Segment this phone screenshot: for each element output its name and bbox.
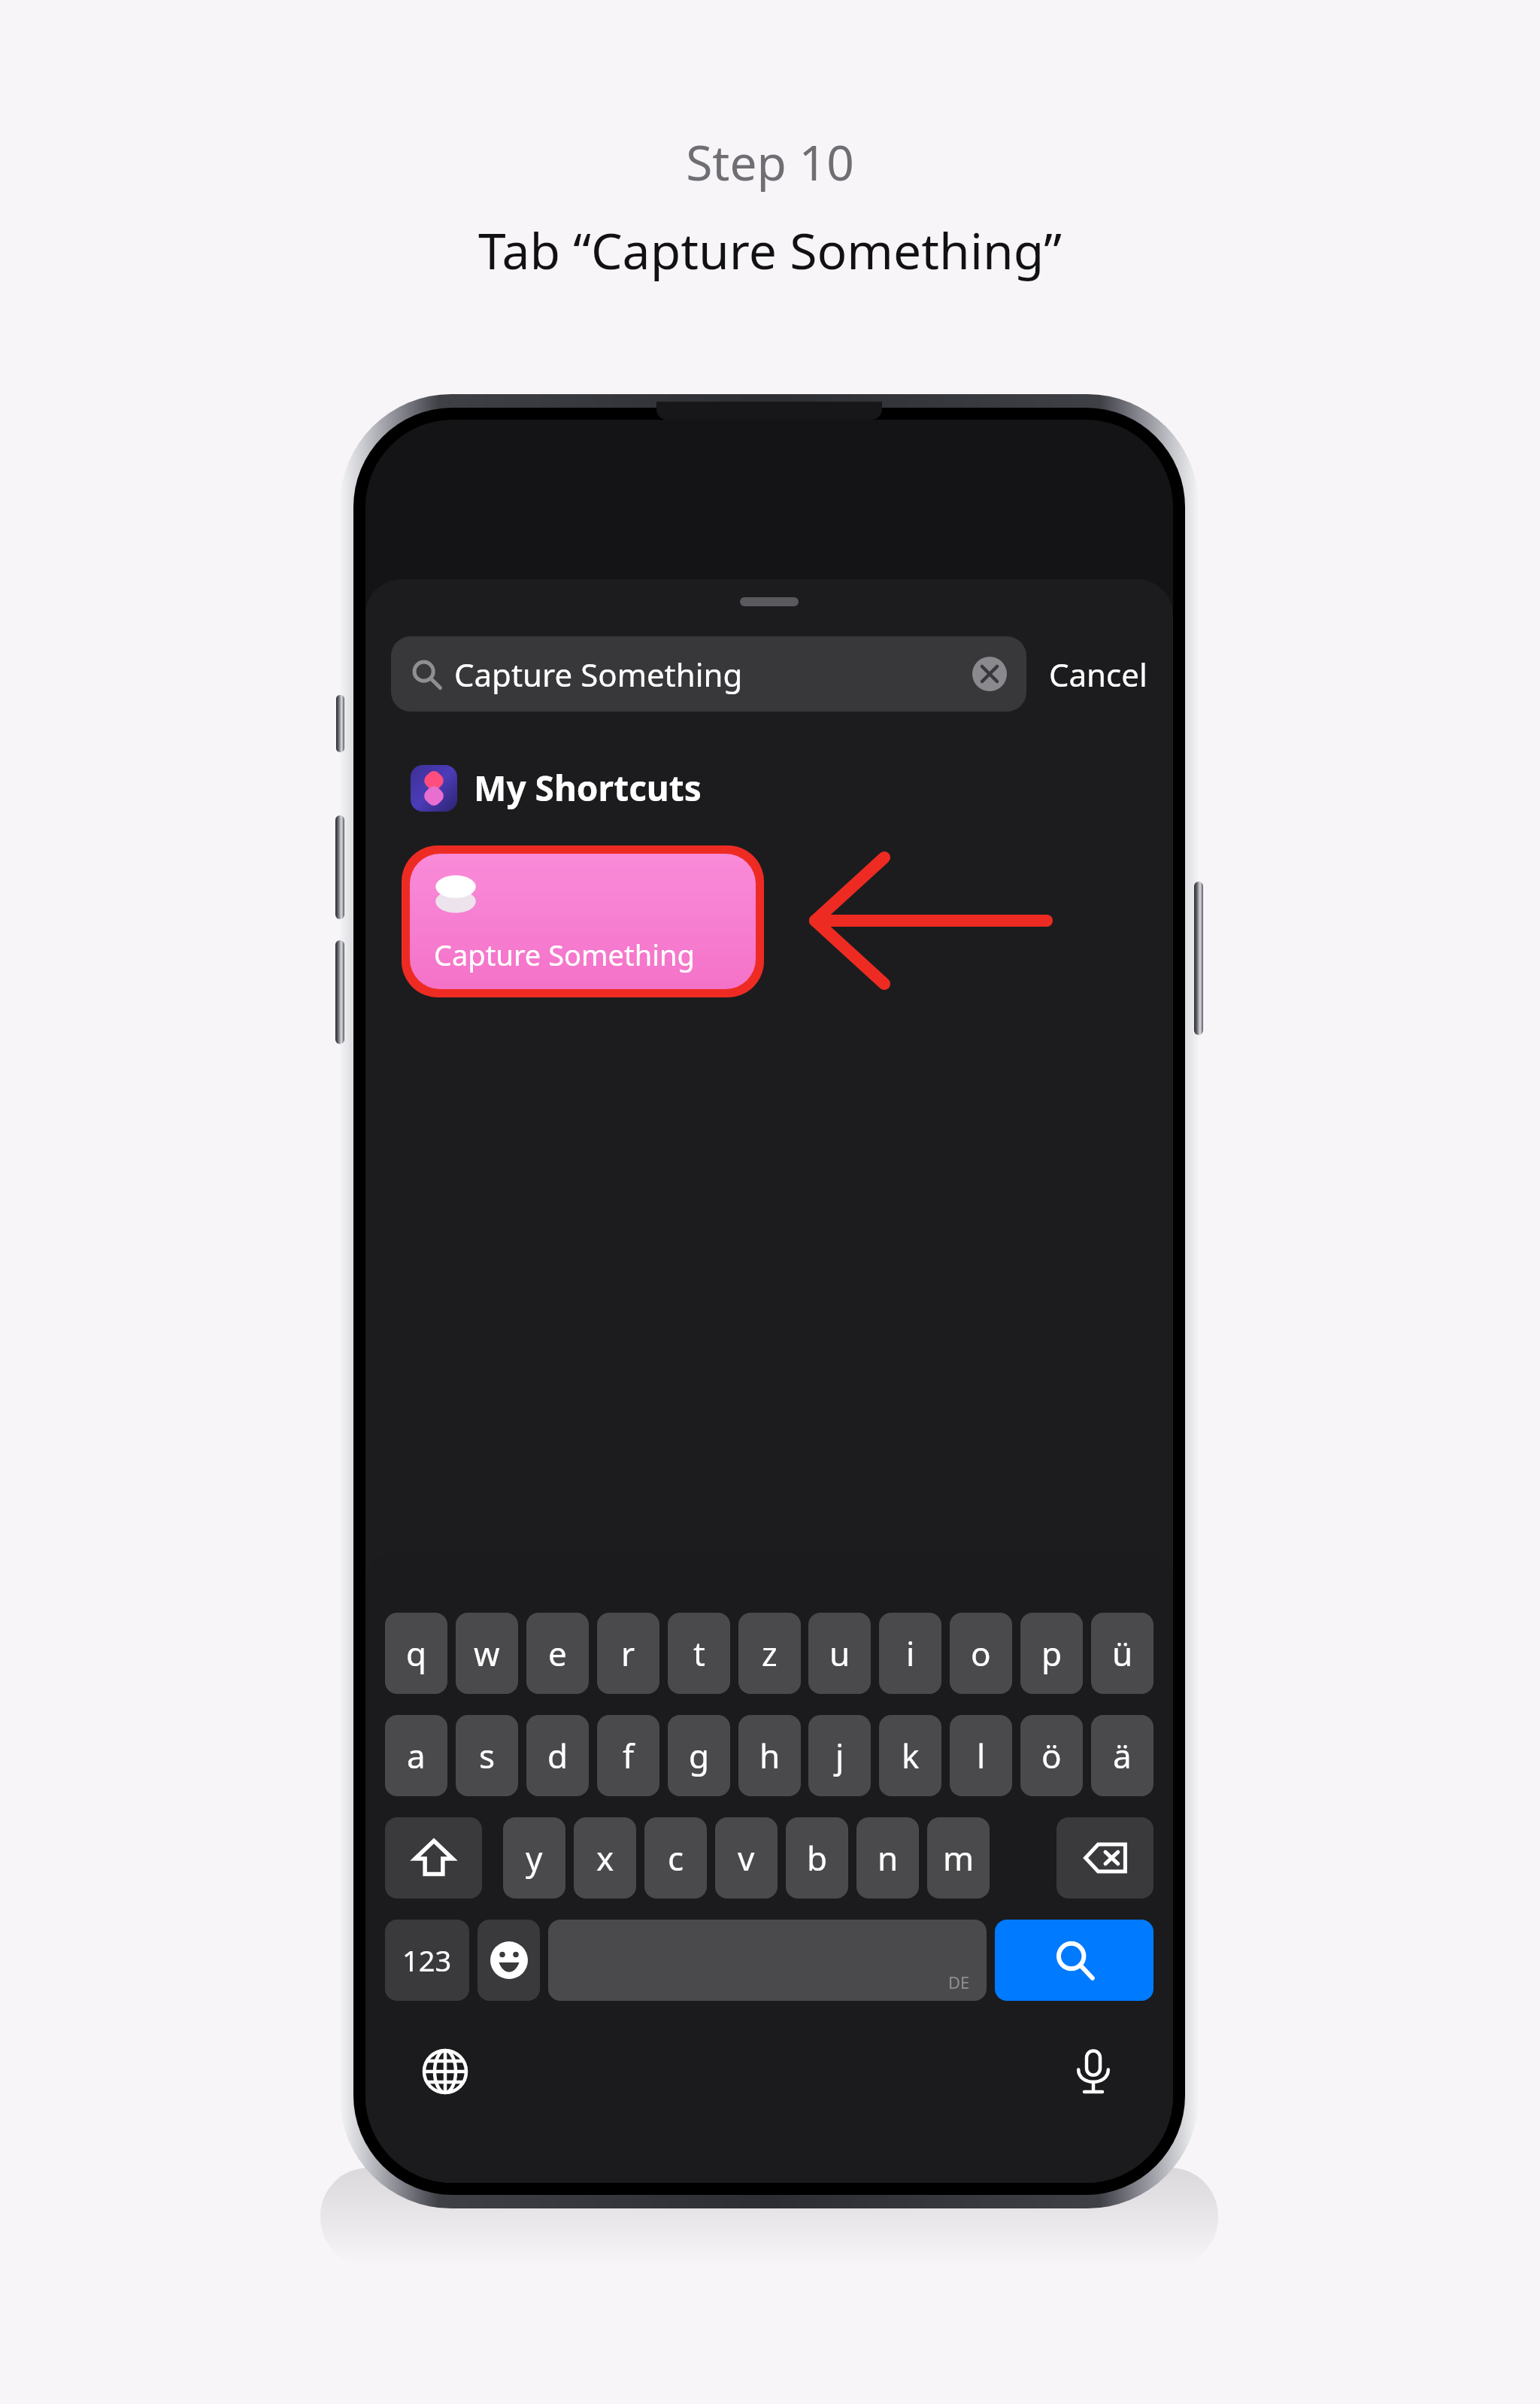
- button[interactable]: 123: [385, 1920, 469, 2001]
- button[interactable]: Emoji: [477, 1920, 540, 2001]
- staticText: g: [689, 1733, 710, 1778]
- button[interactable]: c: [644, 1817, 707, 1899]
- staticText: s: [479, 1733, 496, 1778]
- staticText: Step 10: [686, 129, 854, 195]
- staticText: Capture Something: [434, 935, 695, 974]
- button[interactable]: n: [856, 1817, 919, 1899]
- button[interactable]: j: [808, 1715, 871, 1796]
- button[interactable]: Search: [995, 1920, 1153, 2001]
- staticText: f: [623, 1733, 635, 1778]
- staticText: u: [829, 1631, 850, 1676]
- button[interactable]: ä: [1091, 1715, 1153, 1796]
- button[interactable]: o: [950, 1613, 1012, 1694]
- staticText: b: [807, 1835, 828, 1880]
- button[interactable]: Space: [548, 1920, 987, 2001]
- button[interactable]: e: [526, 1613, 589, 1694]
- staticText: k: [902, 1733, 920, 1778]
- staticText: y: [526, 1835, 543, 1880]
- staticText: a: [407, 1733, 426, 1778]
- button[interactable]: s: [456, 1715, 518, 1796]
- button[interactable]: ö: [1020, 1715, 1083, 1796]
- button[interactable]: k: [879, 1715, 941, 1796]
- button[interactable]: i: [879, 1613, 941, 1694]
- button[interactable]: t: [668, 1613, 730, 1694]
- button[interactable]: r: [597, 1613, 659, 1694]
- button[interactable]: Clear text: [972, 657, 1007, 691]
- staticText: Capture Something: [454, 653, 743, 696]
- staticText: Tab “Capture Something”: [478, 216, 1062, 284]
- staticText: 123: [402, 1941, 452, 1980]
- button[interactable]: ü: [1091, 1613, 1153, 1694]
- button[interactable]: u: [808, 1613, 871, 1694]
- button[interactable]: Change keyboard: [417, 2043, 474, 2100]
- button[interactable]: Shift: [385, 1817, 482, 1899]
- button[interactable]: Dictate: [1065, 2043, 1122, 2100]
- staticText: z: [762, 1631, 778, 1676]
- button[interactable]: f: [597, 1715, 659, 1796]
- button[interactable]: v: [715, 1817, 778, 1899]
- button[interactable]: y: [503, 1817, 565, 1899]
- button[interactable]: Cancel: [1044, 644, 1152, 705]
- button[interactable]: w: [456, 1613, 518, 1694]
- staticText: t: [693, 1631, 705, 1676]
- button[interactable]: Capture Something: [391, 636, 1026, 712]
- staticText: x: [596, 1835, 614, 1880]
- staticText: n: [878, 1835, 899, 1880]
- staticText: e: [548, 1631, 567, 1676]
- button[interactable]: Backspace: [1056, 1817, 1153, 1899]
- staticText: j: [835, 1733, 844, 1778]
- staticText: d: [547, 1733, 568, 1778]
- staticText: q: [406, 1631, 427, 1676]
- button[interactable]: z: [738, 1613, 801, 1694]
- button[interactable]: d: [526, 1715, 589, 1796]
- staticText: My Shortcuts: [474, 764, 702, 812]
- staticText: ä: [1113, 1733, 1132, 1778]
- staticText: r: [621, 1631, 635, 1676]
- button[interactable]: l: [950, 1715, 1012, 1796]
- button[interactable]: q: [385, 1613, 447, 1694]
- button[interactable]: x: [574, 1817, 636, 1899]
- staticText: o: [971, 1631, 991, 1676]
- staticText: ö: [1041, 1733, 1062, 1778]
- staticText: w: [474, 1631, 500, 1676]
- staticText: v: [738, 1835, 755, 1880]
- button[interactable]: g: [668, 1715, 730, 1796]
- button[interactable]: a: [385, 1715, 447, 1796]
- staticText: l: [977, 1733, 986, 1778]
- button[interactable]: Capture Something: [410, 854, 756, 989]
- staticText: h: [759, 1733, 781, 1778]
- button[interactable]: m: [927, 1817, 990, 1899]
- staticText: p: [1041, 1631, 1063, 1676]
- staticText: i: [906, 1631, 915, 1676]
- button[interactable]: h: [738, 1715, 801, 1796]
- button[interactable]: p: [1020, 1613, 1083, 1694]
- staticText: DE: [948, 1971, 970, 1993]
- staticText: m: [943, 1835, 975, 1880]
- staticText: ü: [1112, 1631, 1133, 1676]
- button[interactable]: b: [786, 1817, 848, 1899]
- staticText: c: [668, 1835, 684, 1880]
- staticText: Cancel: [1049, 653, 1147, 696]
